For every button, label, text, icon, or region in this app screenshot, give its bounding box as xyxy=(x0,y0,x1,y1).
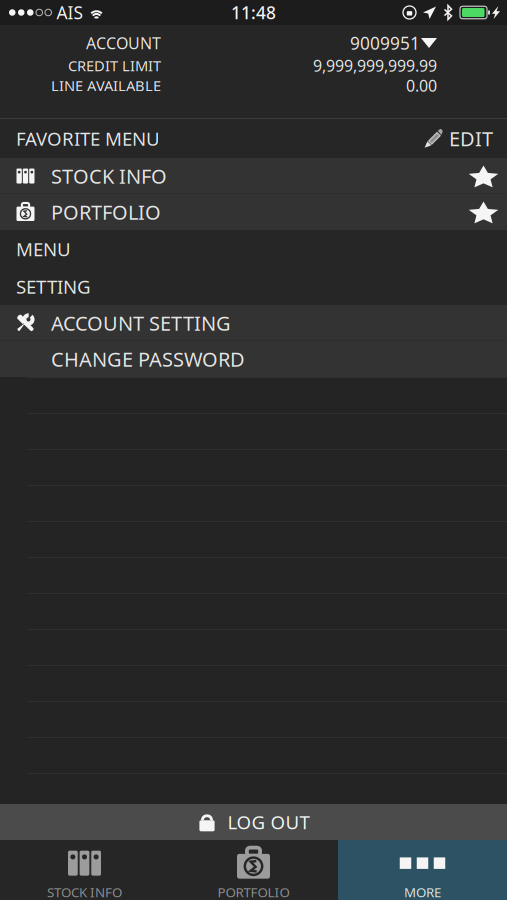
staticText: LOG OUT xyxy=(227,810,309,834)
staticText: MENU xyxy=(16,237,71,261)
staticText: MORE xyxy=(404,883,441,900)
staticText: LINE AVAILABLE xyxy=(51,76,161,95)
button[interactable]: PORTFOLIO xyxy=(0,194,507,230)
staticText: ACCOUNT xyxy=(86,32,161,54)
button[interactable]: PORTFOLIO xyxy=(169,840,338,900)
staticText: 9009951 xyxy=(350,31,420,54)
staticText: CHANGE PASSWORD xyxy=(51,346,245,372)
staticText: CREDIT LIMIT xyxy=(68,56,161,75)
button[interactable]: STOCK INFO xyxy=(0,158,507,194)
button[interactable]: ACCOUNT SETTING xyxy=(0,305,507,341)
staticText: PORTFOLIO xyxy=(217,883,289,900)
button[interactable]: LOG OUT xyxy=(0,804,507,840)
staticText: SETTING xyxy=(16,274,91,299)
button[interactable]: EDIT xyxy=(415,117,493,160)
button[interactable]: CHANGE PASSWORD xyxy=(0,341,507,377)
staticText: AIS xyxy=(56,1,83,24)
staticText: FAVORITE MENU xyxy=(16,126,160,151)
button[interactable]: STOCK INFO xyxy=(0,840,169,900)
staticText: ACCOUNT SETTING xyxy=(51,310,231,336)
button[interactable]: MORE xyxy=(338,840,507,900)
staticText: 0.00 xyxy=(406,75,437,96)
staticText: STOCK INFO xyxy=(47,883,122,900)
staticText: STOCK INFO xyxy=(51,163,167,189)
staticText: PORTFOLIO xyxy=(51,199,161,225)
staticText: 9,999,999,999.99 xyxy=(313,55,437,76)
staticText: EDIT xyxy=(449,125,493,152)
staticText: 11:48 xyxy=(231,1,276,24)
